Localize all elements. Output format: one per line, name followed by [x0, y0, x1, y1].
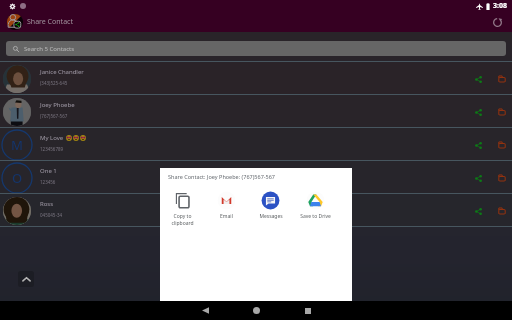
staticText: Copy to clipboard [171, 213, 194, 227]
staticText: Joey Phoebe [40, 101, 75, 109]
staticText: Messages [259, 213, 283, 220]
button[interactable]: Delete contact [492, 201, 512, 221]
staticText: Janice Chandler [40, 68, 84, 76]
button[interactable]: Home [247, 301, 266, 320]
button[interactable]: Messages [248, 191, 293, 220]
button[interactable]: Share contact [468, 201, 488, 221]
button[interactable]: Refresh [488, 13, 506, 31]
staticText: 3:08 [493, 1, 507, 11]
button[interactable]: Ross [0, 194, 512, 227]
staticText: 045045-34 [40, 212, 63, 218]
button[interactable]: Share contact [468, 102, 488, 122]
staticText: Email [220, 213, 233, 220]
button[interactable]: Recent apps [298, 301, 317, 320]
staticText: 123456789 [40, 146, 64, 152]
staticText: (343)525-645 [40, 80, 68, 86]
button[interactable]: Email [204, 191, 248, 220]
staticText: One 1 [40, 167, 57, 175]
staticText: Save to Drive [300, 213, 331, 220]
button[interactable]: Share contact [468, 168, 488, 188]
staticText: Share Contact [27, 17, 73, 27]
button[interactable]: Search 5 Contacts [6, 41, 506, 56]
button[interactable]: Delete contact [492, 102, 512, 122]
button[interactable]: Delete contact [492, 135, 512, 155]
button[interactable]: Joey Phoebe [0, 95, 512, 128]
button[interactable]: M [0, 128, 512, 161]
button[interactable]: Delete contact [492, 69, 512, 89]
button[interactable]: Delete contact [492, 168, 512, 188]
button[interactable]: Save to Drive [293, 191, 338, 220]
staticText: Ross [40, 200, 54, 208]
button[interactable]: Back [196, 301, 215, 320]
staticText: My Love [40, 134, 64, 142]
button[interactable]: Scroll to top [18, 271, 34, 287]
staticText: Share Contact: Joey Phoebe: (767)567-567 [168, 173, 275, 180]
staticText: M [11, 136, 23, 154]
staticText: 123456 [40, 179, 56, 185]
button[interactable]: O [0, 161, 512, 194]
button[interactable]: Copy to clipboard [160, 191, 204, 227]
staticText: Search 5 Contacts [24, 45, 75, 53]
staticText: (767)567-567 [40, 113, 68, 119]
button[interactable]: Share contact [468, 69, 488, 89]
staticText: O [12, 169, 23, 187]
button[interactable]: Janice Chandler [0, 62, 512, 95]
button[interactable]: Share contact [468, 135, 488, 155]
